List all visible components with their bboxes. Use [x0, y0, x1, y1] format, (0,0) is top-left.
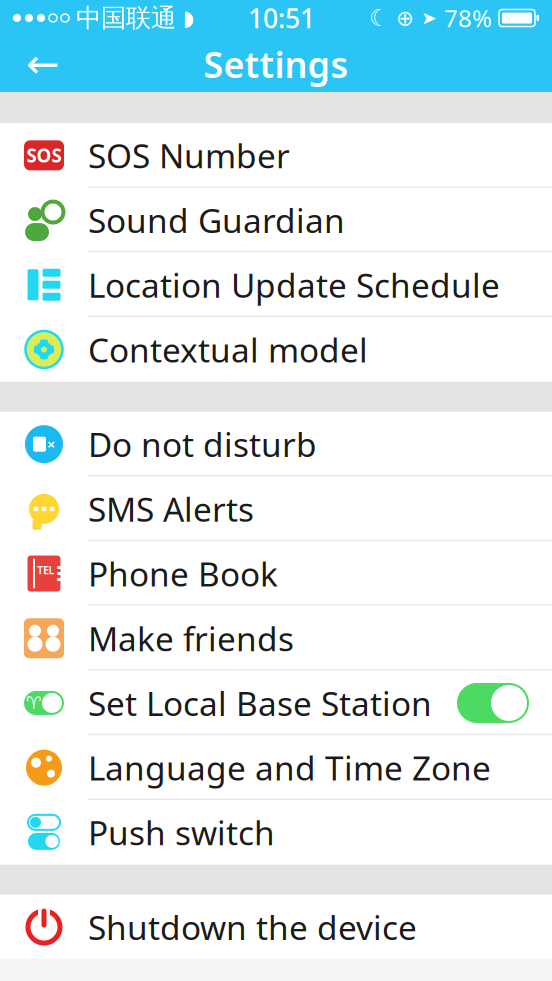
staticText: Contextual model [88, 327, 368, 372]
staticText: × [47, 434, 55, 454]
staticText: ➤ [421, 7, 437, 29]
button[interactable]: × [0, 412, 552, 476]
button[interactable]: SMS Alerts [0, 476, 552, 541]
button[interactable]: Make friends [0, 606, 552, 671]
staticText: Shutdown the device [88, 905, 417, 949]
button[interactable]: ℡ [0, 541, 552, 606]
button[interactable]: Back [14, 36, 72, 92]
staticText: SOS [26, 143, 61, 168]
staticText: SMS Alerts [88, 487, 254, 531]
staticText: 78% [444, 2, 492, 34]
staticText: Location Update Schedule [88, 263, 500, 307]
staticText: Do not disturb [88, 422, 317, 466]
staticText: Set Local Base Station [88, 681, 432, 725]
staticText: Sound Guardian [88, 198, 345, 242]
staticText: ⊕ [396, 6, 414, 30]
button[interactable]: Language and Time Zone [0, 735, 552, 800]
staticText: 中国联通 [76, 2, 176, 33]
staticText: Push switch [88, 810, 275, 854]
staticText: ◗ [183, 6, 194, 30]
button[interactable]: Shutdown the device [0, 895, 552, 959]
staticText: Settings [203, 40, 348, 88]
button[interactable]: Location Update Schedule [0, 252, 552, 317]
staticText: Language and Time Zone [88, 745, 491, 790]
staticText: Phone Book [88, 551, 278, 596]
button[interactable]: SOS [0, 123, 552, 188]
button[interactable]: Push switch [0, 800, 552, 865]
staticText: ☾ [369, 5, 389, 31]
staticText: SOS Number [88, 133, 290, 177]
button[interactable]: ♈︎ [0, 671, 552, 735]
staticText: 10:51 [248, 0, 315, 36]
staticText: ℡ [37, 558, 55, 589]
staticText: ← [26, 41, 60, 87]
staticText: ♈︎ [26, 693, 42, 713]
button[interactable]: Contextual model [0, 317, 552, 382]
staticText: Make friends [88, 616, 294, 660]
button[interactable]: Sound Guardian [0, 188, 552, 252]
